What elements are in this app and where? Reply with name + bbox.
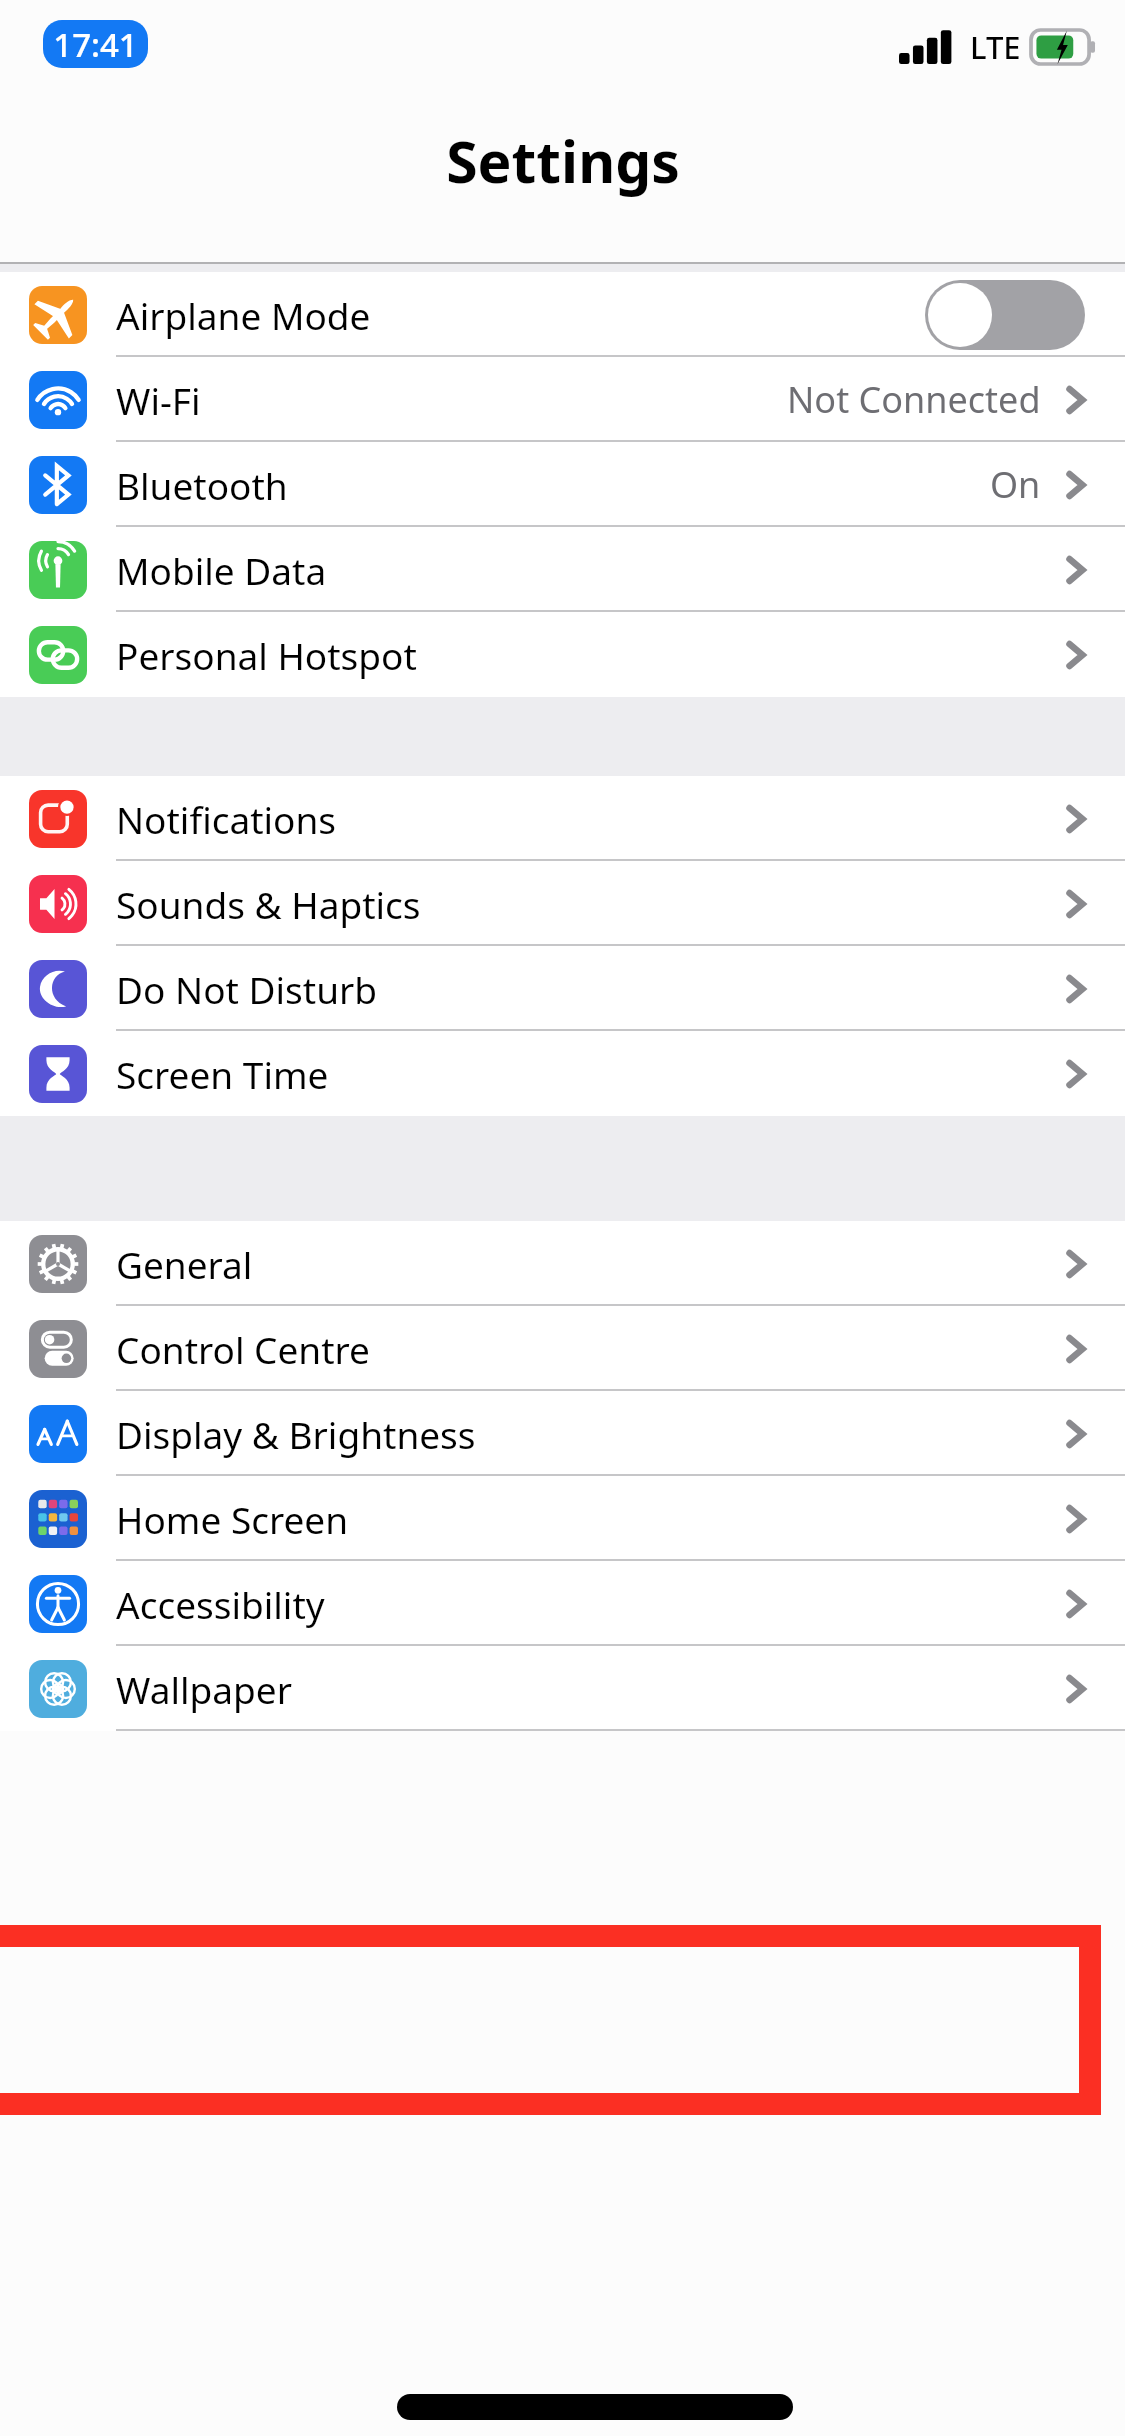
staticText: Accessibility [116,1579,325,1629]
button[interactable]: Screen Time [0,1031,1125,1116]
button[interactable]: Do Not Disturb [0,946,1125,1031]
button[interactable]: Home Screen [0,1476,1125,1561]
button[interactable]: Mobile Data [0,527,1125,612]
staticText: Airplane Mode [116,290,371,340]
staticText: Personal Hotspot [116,630,417,680]
button[interactable]: General [0,1221,1125,1306]
staticText: Wallpaper [116,1664,292,1714]
button[interactable]: Sounds & Haptics [0,861,1125,946]
staticText: General [116,1239,253,1289]
staticText: Do Not Disturb [116,964,378,1014]
staticText: Home Screen [116,1494,349,1544]
staticText: Settings [446,122,680,200]
staticText: Sounds & Haptics [116,879,421,929]
staticText: LTE [970,26,1021,68]
button[interactable]: Wi-Fi [0,357,1125,442]
button[interactable]: Display & Brightness [0,1391,1125,1476]
button[interactable]: Bluetooth [0,442,1125,527]
button[interactable]: Airplane Mode [0,272,1125,357]
staticText: Screen Time [116,1049,329,1099]
staticText: Bluetooth [116,460,288,510]
button[interactable]: Wallpaper [0,1646,1125,1731]
button[interactable]: Notifications [0,776,1125,861]
staticText: Not Connected [787,375,1041,424]
button[interactable]: Control Centre [0,1306,1125,1391]
staticText: Display & Brightness [116,1409,476,1459]
staticText: 17:41 [53,22,138,67]
staticText: Control Centre [116,1324,370,1374]
staticText: Wi-Fi [116,375,201,425]
staticText: On [990,460,1041,509]
staticText: Mobile Data [116,545,327,595]
button[interactable]: Accessibility [0,1561,1125,1646]
button[interactable]: Personal Hotspot [0,612,1125,697]
staticText: Notifications [116,794,337,844]
button[interactable]: Airplane Mode toggle, off [925,280,1085,350]
